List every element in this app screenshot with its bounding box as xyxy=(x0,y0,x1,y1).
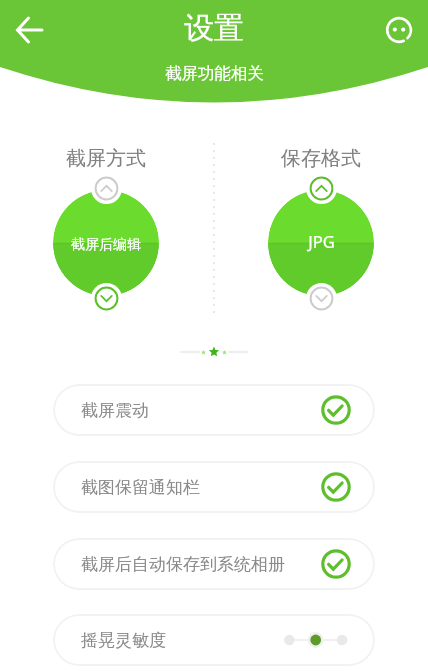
button[interactable]: 截图保留通知栏 xyxy=(53,461,375,513)
button[interactable]: Help xyxy=(377,8,420,51)
button[interactable]: 截屏后自动保存到系统相册 xyxy=(53,538,375,590)
button[interactable]: 摇晃灵敏度 xyxy=(53,614,375,666)
button[interactable]: Back xyxy=(7,8,51,52)
button[interactable]: Previous xyxy=(91,173,122,204)
button[interactable]: Previous xyxy=(306,173,337,204)
button[interactable]: JPG xyxy=(268,190,374,296)
staticText: JPG xyxy=(308,230,335,252)
staticText: 截屏后自动保存到系统相册 xyxy=(81,554,285,575)
staticText: 保存格式 xyxy=(268,146,374,171)
staticText: 截屏震动 xyxy=(81,400,149,421)
staticText: 摇晃灵敏度 xyxy=(81,630,166,651)
staticText: 截屏方式 xyxy=(53,146,159,171)
button[interactable]: Medium xyxy=(304,628,327,651)
button[interactable]: Next xyxy=(91,283,122,314)
staticText: 截屏后编辑 xyxy=(71,236,141,254)
button[interactable]: Next xyxy=(306,283,337,314)
button[interactable]: High xyxy=(330,628,353,651)
button[interactable]: 截屏后编辑 xyxy=(53,190,159,296)
staticText: 截屏功能相关 xyxy=(165,63,264,84)
staticText: 截图保留通知栏 xyxy=(81,477,200,498)
staticText: 设置 xyxy=(184,9,244,47)
button[interactable]: 截屏震动 xyxy=(53,384,375,436)
button[interactable]: Low xyxy=(278,628,301,651)
